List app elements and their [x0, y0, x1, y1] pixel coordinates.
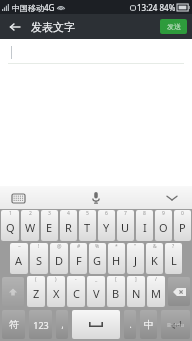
- staticText: G: [93, 253, 102, 268]
- staticText: %: [95, 243, 100, 250]
- staticText: 8: [143, 210, 146, 217]
- button[interactable]: /: [147, 276, 165, 307]
- button[interactable]: Back: [4, 16, 26, 38]
- staticText: @: [57, 243, 62, 250]
- staticText: #: [77, 243, 81, 250]
- staticText: 中: [144, 318, 154, 331]
- button[interactable]: ): [47, 276, 65, 307]
- staticText: O: [159, 220, 168, 235]
- staticText: ?: [172, 243, 175, 250]
- button[interactable]: Enter: [161, 310, 190, 339]
- staticText: .: [129, 319, 132, 330]
- staticText: ,: [61, 319, 64, 330]
- button[interactable]: Hide keyboard: [162, 188, 182, 208]
- staticText: Baidu: [167, 321, 185, 329]
- staticText: X: [53, 286, 60, 301]
- button[interactable]: !: [30, 243, 48, 274]
- staticText: ): [55, 276, 57, 283]
- button[interactable]: *: [108, 243, 125, 274]
- button[interactable]: Backspace: [168, 277, 190, 306]
- staticText: I: [143, 220, 147, 235]
- button[interactable]: ?: [165, 243, 182, 274]
- staticText: 6: [105, 210, 108, 217]
- staticText: 9: [162, 210, 165, 217]
- staticText: M: [151, 286, 161, 301]
- button[interactable]: -: [67, 276, 85, 307]
- button[interactable]: %: [89, 243, 106, 274]
- button[interactable]: 发送: [160, 19, 187, 34]
- staticText: Z: [33, 286, 40, 301]
- staticText: 发表文字: [31, 20, 75, 34]
- button[interactable]: ~: [10, 243, 28, 274]
- button[interactable]: 0: [174, 210, 191, 241]
- staticText: 中国移动4G: [12, 2, 55, 13]
- button[interactable]: Period: [124, 310, 136, 339]
- button[interactable]: ": [127, 243, 144, 274]
- button[interactable]: Voice input: [86, 188, 106, 208]
- button[interactable]: @: [50, 243, 68, 274]
- staticText: 3: [48, 210, 51, 217]
- staticText: E: [46, 220, 53, 235]
- button[interactable]: Space: [72, 310, 120, 339]
- button[interactable]: Symbols: [2, 310, 25, 339]
- button[interactable]: Shift: [2, 277, 24, 306]
- staticText: V: [93, 286, 100, 301]
- staticText: 符: [9, 318, 19, 331]
- staticText: F: [76, 253, 82, 268]
- staticText: /: [155, 276, 157, 283]
- staticText: D: [55, 253, 64, 268]
- staticText: 0: [181, 210, 184, 217]
- staticText: W: [25, 220, 36, 235]
- button[interactable]: [: [107, 276, 125, 307]
- staticText: 13:24 84%: [137, 2, 176, 13]
- staticText: 123: [33, 319, 49, 331]
- button[interactable]: Numbers: [29, 310, 52, 339]
- staticText: B: [112, 286, 120, 301]
- staticText: -: [75, 276, 77, 283]
- staticText: A: [15, 253, 23, 268]
- button[interactable]: 3: [41, 210, 58, 241]
- staticText: [: [115, 276, 117, 283]
- button[interactable]: 6: [98, 210, 115, 241]
- button[interactable]: Switch keyboard layout: [8, 188, 28, 208]
- staticText: K: [151, 253, 158, 268]
- staticText: T: [84, 220, 91, 235]
- button[interactable]: (: [27, 276, 45, 307]
- staticText: 发送: [167, 22, 181, 31]
- staticText: U: [121, 220, 130, 235]
- staticText: Q: [6, 220, 15, 235]
- button[interactable]: 9: [155, 210, 172, 241]
- staticText: J: [134, 253, 138, 268]
- staticText: L: [171, 253, 177, 268]
- staticText: P: [179, 220, 186, 235]
- staticText: N: [132, 286, 141, 301]
- staticText: R: [65, 220, 72, 235]
- button[interactable]: 8: [136, 210, 153, 241]
- button[interactable]: 1: [1, 210, 19, 241]
- staticText: 1: [9, 210, 12, 217]
- staticText: !: [38, 243, 40, 250]
- button[interactable]: 7: [117, 210, 134, 241]
- button[interactable]: Comma: [56, 310, 68, 339]
- staticText: 7: [124, 210, 127, 217]
- staticText: H: [112, 253, 121, 268]
- button[interactable]: 4: [60, 210, 77, 241]
- staticText: ~: [18, 243, 21, 250]
- staticText: Y: [103, 220, 110, 235]
- staticText: 2: [29, 210, 32, 217]
- staticText: S: [36, 253, 43, 268]
- staticText: &: [153, 243, 157, 250]
- button[interactable]: _: [87, 276, 105, 307]
- button[interactable]: 2: [21, 210, 39, 241]
- button[interactable]: 5: [79, 210, 96, 241]
- button[interactable]: Language: [140, 310, 157, 339]
- button[interactable]: #: [70, 243, 87, 274]
- staticText: ": [134, 243, 137, 250]
- staticText: (: [35, 276, 37, 283]
- button[interactable]: ]: [127, 276, 145, 307]
- staticText: *: [115, 243, 118, 250]
- staticText: C: [73, 286, 80, 301]
- button[interactable]: &: [146, 243, 163, 274]
- staticText: ]: [135, 276, 137, 283]
